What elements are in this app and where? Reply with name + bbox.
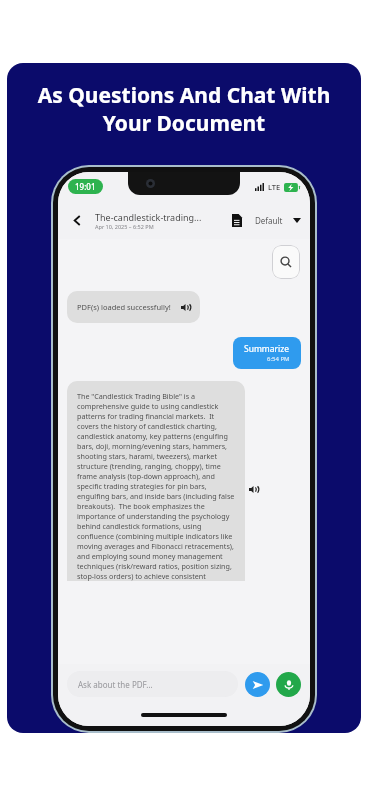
button[interactable]: Summarize	[244, 343, 290, 363]
button[interactable]: Default	[255, 215, 301, 226]
staticText: Default	[255, 215, 283, 226]
button[interactable]: Search	[272, 245, 300, 279]
staticText: Summarize	[244, 343, 290, 355]
button[interactable]: The "Candlestick Trading Bible" is a com…	[77, 391, 235, 581]
button[interactable]: PDF(s) loaded successfully!	[77, 302, 190, 312]
staticText: The-candlestick-trading...	[95, 211, 202, 223]
button[interactable]: Back	[67, 210, 87, 230]
staticText: Apr 10, 2025 – 6:52 PM	[95, 223, 154, 230]
staticText: 6:54 PM	[267, 355, 290, 363]
button[interactable]: Send	[245, 672, 270, 697]
staticText: LTE	[268, 182, 281, 192]
staticText: The "Candlestick Trading Bible" is a com…	[77, 391, 235, 581]
button[interactable]: Document	[228, 211, 246, 229]
staticText: 19:01	[75, 181, 96, 192]
staticText: As Questions And Chat With Your Document	[7, 81, 361, 137]
button[interactable]: Voice input	[276, 672, 301, 697]
staticText: Ask about the PDF...	[78, 679, 153, 690]
button[interactable]: Ask about the PDF...	[78, 671, 227, 697]
staticText: PDF(s) loaded successfully!	[77, 302, 171, 312]
